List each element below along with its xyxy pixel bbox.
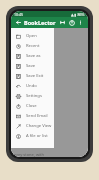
staticText: ▲ ▮ 86% (71, 12, 85, 17)
staticText: Save (26, 63, 36, 69)
button[interactable]: Close (11, 101, 54, 111)
staticText: Send Email (26, 113, 48, 119)
staticText: do today as it has (14, 127, 47, 132)
staticText: knew the whole of (14, 107, 49, 112)
staticText: Save Exit (26, 73, 44, 79)
staticText: BookLector (24, 19, 56, 26)
staticText: eginnings go, not (14, 72, 47, 77)
button[interactable]: Undo (11, 81, 54, 91)
staticText: Undo (26, 83, 37, 89)
staticText: Close (26, 103, 37, 109)
staticText: t's Desire. (14, 67, 33, 72)
button[interactable]: Save (11, 61, 54, 71)
button[interactable]: Back (14, 18, 23, 27)
staticText: Save as (26, 53, 41, 59)
staticText: e Village of Wal. (14, 37, 44, 42)
staticText: 10:45 (14, 12, 23, 17)
staticText: gh pit of granite (14, 137, 45, 142)
button[interactable]: Open (11, 31, 54, 41)
staticText: Open (26, 33, 37, 39)
button[interactable]: A file or list (11, 131, 54, 141)
button[interactable]: Settings (11, 91, 54, 101)
button[interactable]: More options (76, 18, 85, 27)
staticText: ung man who (14, 62, 40, 67)
staticText: grey stone, with (14, 152, 44, 157)
staticText: e could yearn in a (14, 87, 48, 92)
staticText: Settings (26, 93, 42, 99)
staticText: hat was unusual, (14, 102, 46, 107)
button[interactable]: Change View (11, 121, 54, 131)
button[interactable]: Power (67, 18, 76, 27)
button[interactable]: Send Email (11, 111, 54, 121)
staticText: Change View (26, 123, 52, 129)
staticText: as much about this (14, 92, 50, 97)
staticText: ure There Every (14, 47, 44, 52)
button[interactable]: Save as (11, 51, 54, 61)
button[interactable]: Save Exit (11, 71, 54, 81)
staticText: ony tales have (14, 117, 41, 122)
staticText: tale about every (14, 77, 45, 82)
staticText: Recent (26, 43, 40, 49)
button[interactable]: Recent (11, 41, 54, 51)
button[interactable]: Bookmark (58, 18, 67, 27)
staticText: A file or list (26, 133, 48, 139)
